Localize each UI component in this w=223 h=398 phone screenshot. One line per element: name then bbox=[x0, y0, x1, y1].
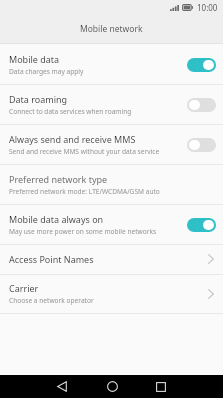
button[interactable]: Home bbox=[97, 375, 127, 398]
staticText: Access Point Names bbox=[9, 253, 94, 265]
staticText: Connect to data services when roaming bbox=[9, 107, 132, 116]
button[interactable]: Back bbox=[47, 375, 77, 398]
staticText: Mobile network bbox=[80, 23, 143, 35]
button[interactable]: Data roaming bbox=[0, 85, 223, 125]
staticText: Data roaming bbox=[9, 93, 68, 105]
staticText: Preferred network type bbox=[9, 173, 108, 185]
staticText: Mobile data always on bbox=[9, 213, 104, 225]
staticText: Carrier bbox=[9, 282, 39, 294]
staticText: Preferred network mode: LTE/WCDMA/GSM au… bbox=[9, 187, 160, 196]
button[interactable]: On bbox=[187, 58, 216, 72]
button[interactable]: Mobile data always on bbox=[0, 205, 223, 245]
button[interactable]: Off bbox=[187, 98, 216, 112]
button[interactable]: Recent apps bbox=[146, 375, 176, 398]
button[interactable]: On bbox=[187, 218, 216, 232]
staticText: Choose a network operator bbox=[9, 296, 94, 305]
button[interactable]: Preferred network type bbox=[0, 165, 223, 205]
button[interactable]: Always send and receive MMS bbox=[0, 125, 223, 165]
staticText: Mobile data bbox=[9, 53, 60, 65]
staticText: May use more power on some mobile networ… bbox=[9, 227, 157, 236]
button[interactable]: Off bbox=[187, 138, 216, 152]
button[interactable]: Access Point Names bbox=[0, 245, 223, 275]
staticText: Data charges may apply bbox=[9, 67, 84, 76]
staticText: Always send and receive MMS bbox=[9, 133, 136, 145]
button[interactable]: Mobile data bbox=[0, 44, 223, 85]
button[interactable]: Carrier bbox=[0, 275, 223, 314]
staticText: Send and receive MMS without your data s… bbox=[9, 147, 160, 156]
staticText: 10:00 bbox=[197, 2, 218, 13]
